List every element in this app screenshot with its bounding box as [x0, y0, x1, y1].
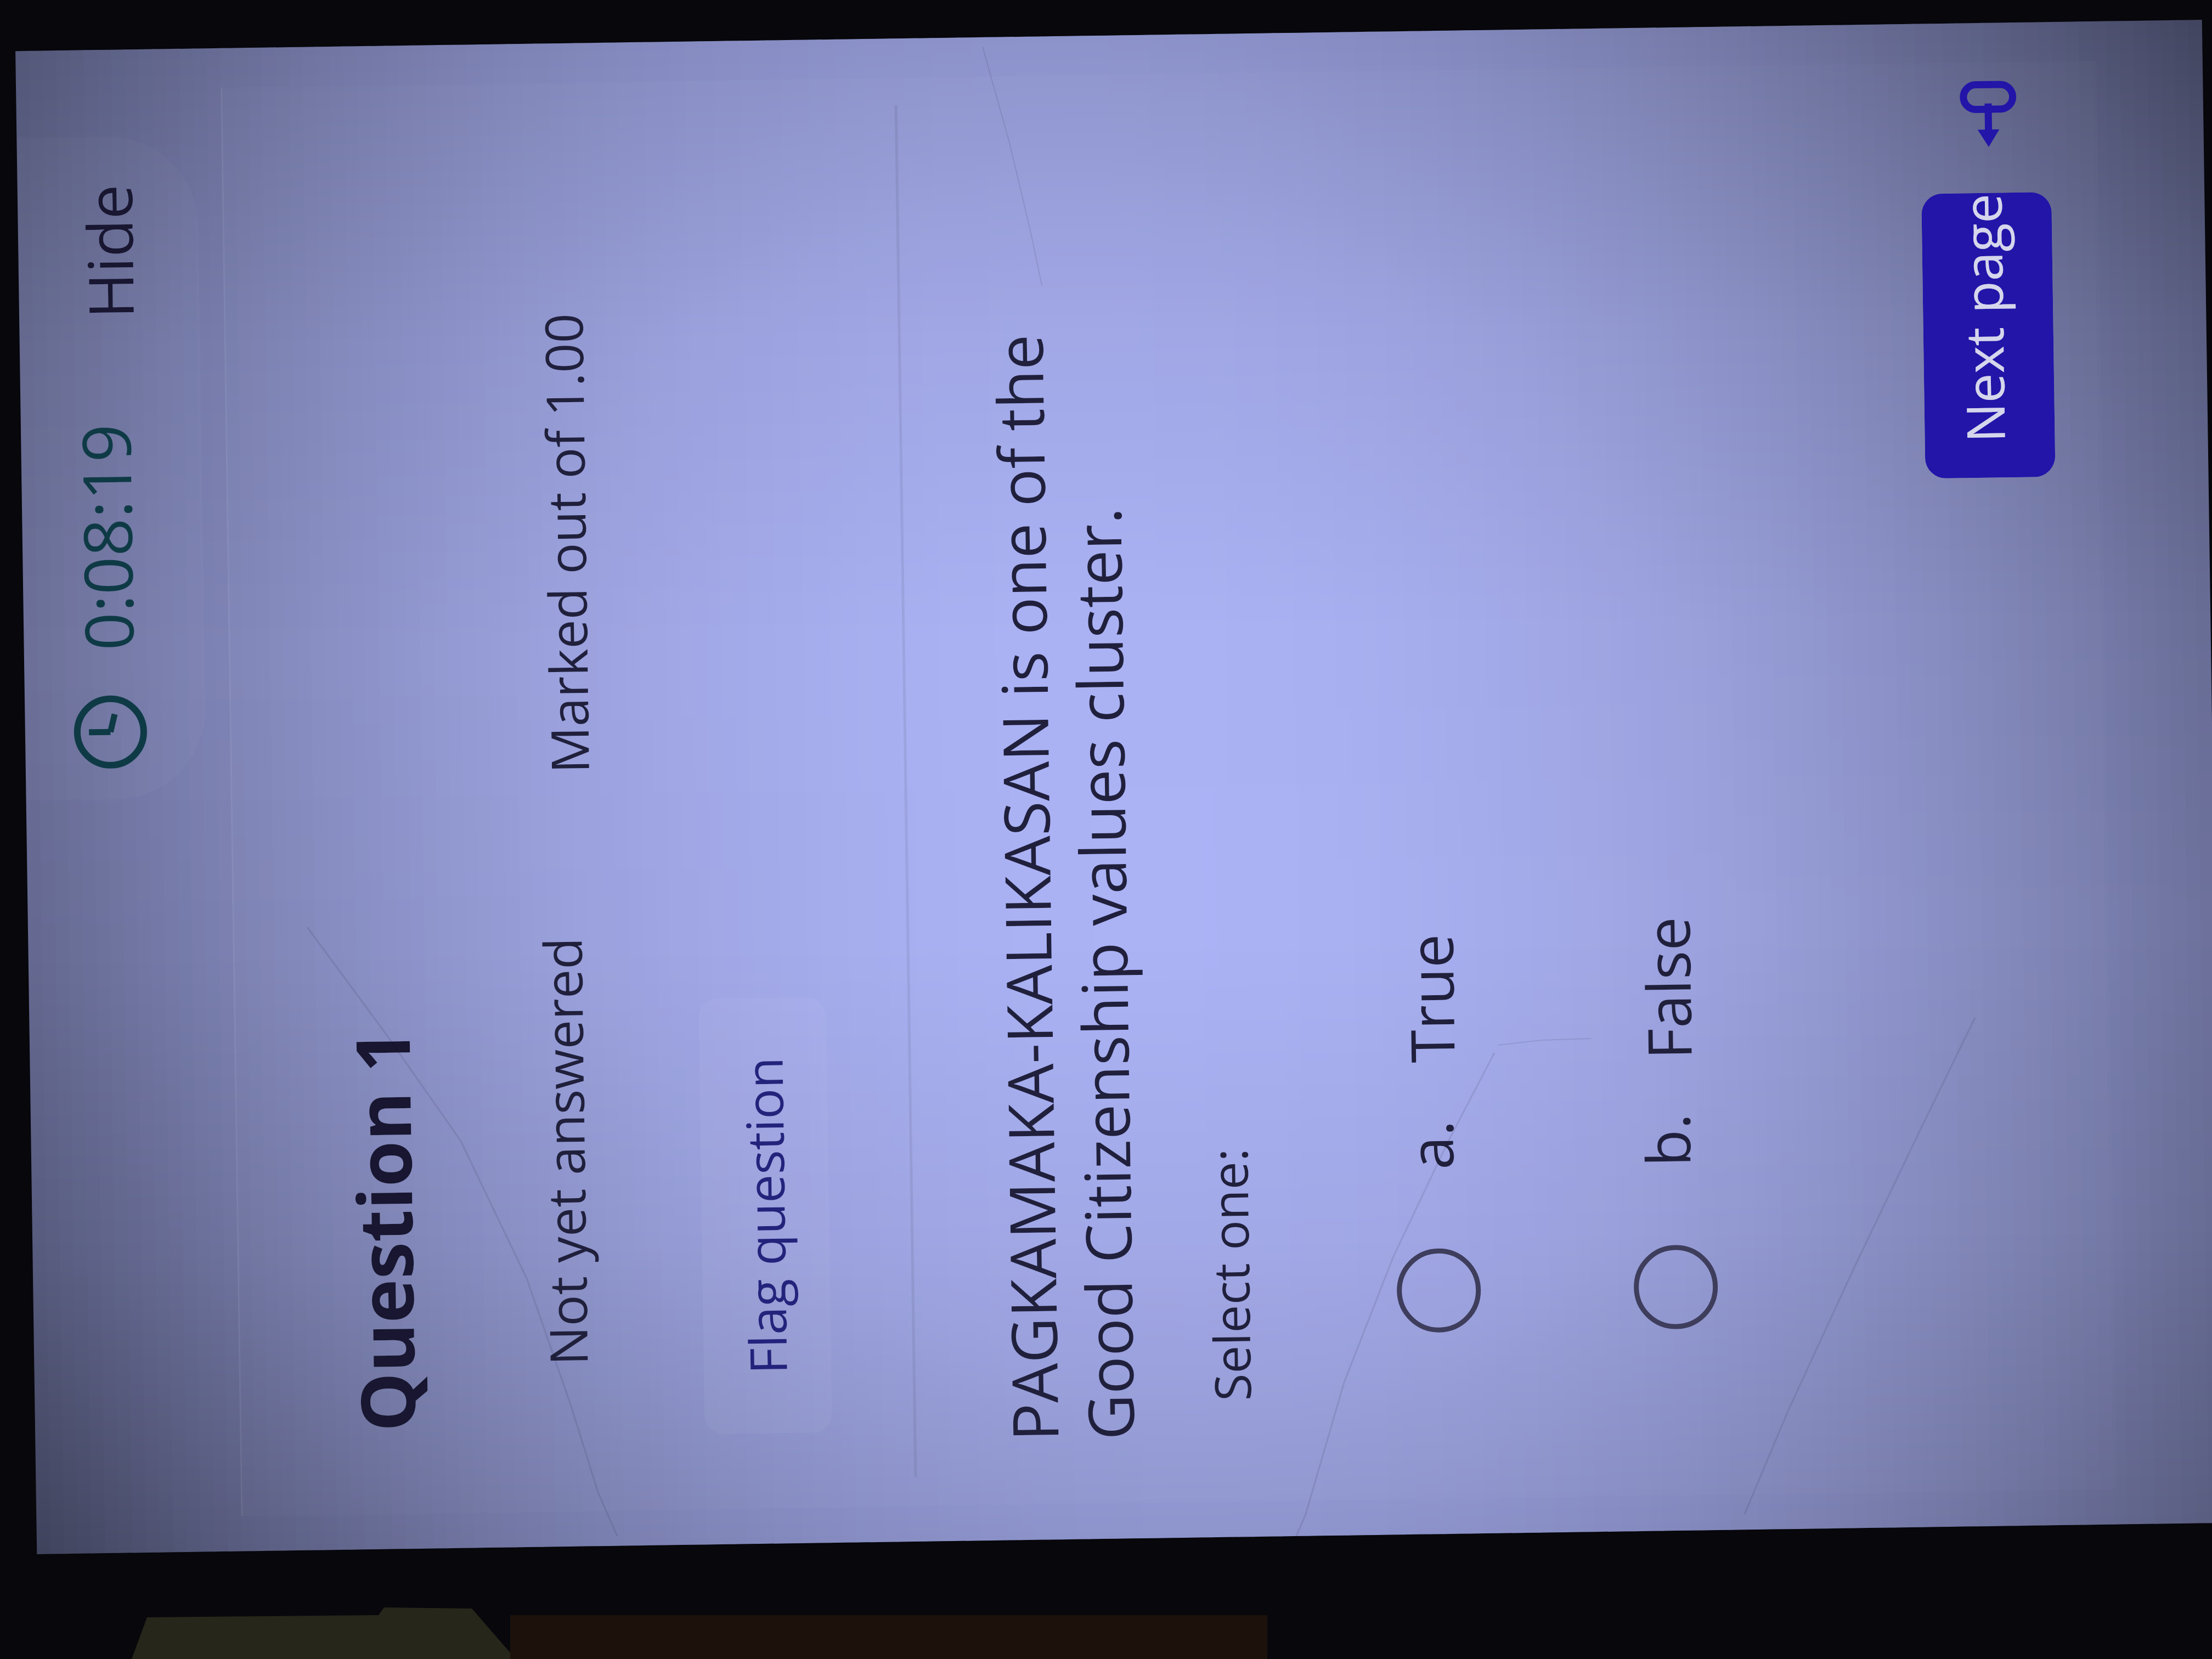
button[interactable]: Choose True	[1395, 1247, 1482, 1334]
button[interactable]: Choose False	[1632, 1244, 1719, 1330]
staticText: Question 1	[330, 1029, 437, 1432]
other: Quiz timer	[73, 694, 148, 770]
staticText: Not yet answered	[526, 937, 603, 1366]
staticText: PAGKAMAKA-KALIKASAN is one of the Good C…	[975, 332, 1153, 1442]
staticText: Next page	[1945, 193, 2020, 443]
staticText: Select one:	[1194, 1148, 1266, 1401]
staticText: Flag question	[728, 1057, 803, 1375]
staticText: True	[1388, 933, 1472, 1063]
button[interactable]: Hide	[45, 155, 172, 348]
button[interactable]: Flag question	[698, 997, 832, 1434]
staticText: a.	[1388, 1119, 1471, 1170]
button[interactable]: Next page	[1921, 192, 2055, 479]
staticText: False	[1625, 916, 1709, 1060]
staticText: b.	[1625, 1113, 1708, 1167]
staticText: 0:08:19	[59, 423, 154, 651]
staticText: Marked out of 1.00	[527, 313, 604, 774]
staticText: Hide	[66, 184, 152, 319]
button[interactable]: Save the answer	[1956, 78, 2029, 152]
